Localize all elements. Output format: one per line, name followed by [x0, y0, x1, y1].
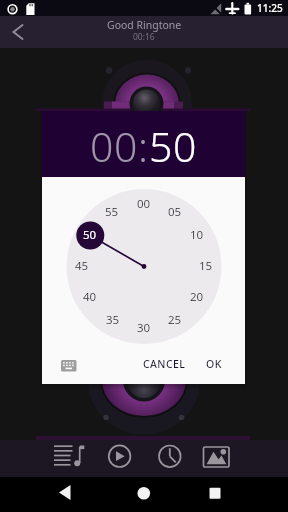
staticText: 11:25: [257, 1, 283, 15]
staticText: 50: [83, 227, 97, 243]
button[interactable]: 00: [90, 118, 138, 174]
button[interactable]: [54, 480, 84, 508]
button[interactable]: 00: [131, 196, 157, 212]
staticText: 20: [190, 289, 204, 305]
staticText: 00: [90, 118, 138, 174]
button[interactable]: OK: [198, 354, 230, 374]
button[interactable]: 35: [100, 312, 126, 328]
staticText: CANCEL: [143, 357, 186, 371]
button[interactable]: CANCEL: [136, 354, 192, 374]
button[interactable]: 40: [77, 289, 103, 305]
button[interactable]: [200, 442, 232, 472]
button[interactable]: 10: [184, 227, 210, 243]
button[interactable]: 50: [77, 227, 103, 243]
staticText: 45: [75, 258, 89, 274]
staticText: 10: [190, 227, 204, 243]
staticText: 00:16: [133, 31, 155, 43]
staticText: 35: [106, 312, 120, 328]
staticText: 40: [83, 289, 97, 305]
staticText: :: [138, 118, 149, 174]
button[interactable]: 25: [162, 312, 188, 328]
button[interactable]: [202, 480, 230, 508]
button[interactable]: 20: [184, 289, 210, 305]
staticText: 30: [137, 320, 151, 336]
button[interactable]: [152, 442, 186, 472]
button[interactable]: [54, 352, 82, 378]
staticText: 25: [168, 312, 182, 328]
button[interactable]: [130, 480, 158, 508]
button[interactable]: 30: [131, 320, 157, 336]
button[interactable]: 50: [149, 118, 197, 174]
staticText: 15: [199, 258, 213, 274]
staticText: 00: [137, 196, 151, 212]
button[interactable]: [104, 442, 136, 472]
staticText: OK: [206, 357, 222, 371]
staticText: 05: [168, 204, 182, 220]
button[interactable]: [4, 20, 32, 44]
button[interactable]: 15: [193, 258, 219, 274]
button[interactable]: 05: [162, 204, 188, 220]
button[interactable]: 45: [69, 258, 95, 274]
staticText: Good Ringtone: [107, 18, 182, 32]
staticText: 55: [105, 204, 119, 220]
button[interactable]: [50, 442, 86, 472]
button[interactable]: 55: [99, 204, 125, 220]
staticText: 50: [149, 118, 197, 174]
